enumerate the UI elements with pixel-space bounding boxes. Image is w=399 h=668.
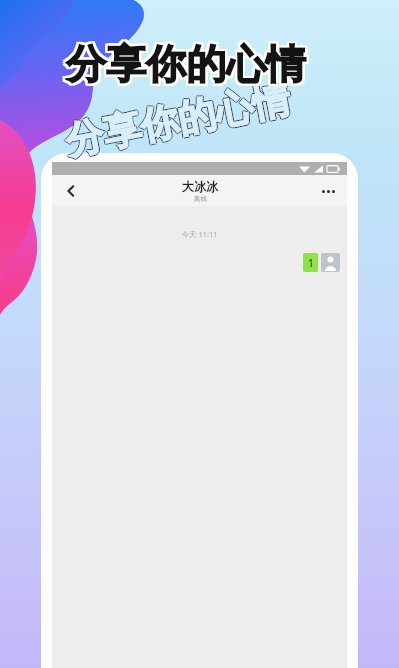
- staticText: 分享你的心情: [61, 74, 294, 164]
- staticText: 分享你的心情: [66, 37, 306, 87]
- staticText: 分享你的心情: [68, 41, 308, 91]
- staticText: 分享你的心情: [66, 39, 306, 89]
- staticText: 分享你的心情: [64, 39, 304, 89]
- staticText: 今天 11:11: [52, 229, 347, 239]
- staticText: 分享你的心情: [66, 41, 306, 91]
- staticText: 分享你的心情: [62, 76, 295, 166]
- button[interactable]: More options: [315, 178, 341, 204]
- staticText: 分享你的心情: [64, 41, 304, 91]
- staticText: 分享你的心情: [61, 75, 294, 165]
- button[interactable]: Back: [58, 178, 84, 204]
- button[interactable]: Avatar: [321, 253, 340, 272]
- staticText: 1: [308, 256, 314, 270]
- staticText: 分享你的心情: [60, 75, 293, 165]
- staticText: 分享你的心情: [68, 39, 308, 89]
- staticText: 大冰冰: [182, 179, 218, 194]
- staticText: 分享你的心情: [62, 74, 295, 165]
- staticText: 分享你的心情: [64, 37, 304, 87]
- button[interactable]: 1: [303, 253, 318, 272]
- staticText: 离线: [194, 195, 207, 203]
- staticText: 分享你的心情: [68, 37, 308, 87]
